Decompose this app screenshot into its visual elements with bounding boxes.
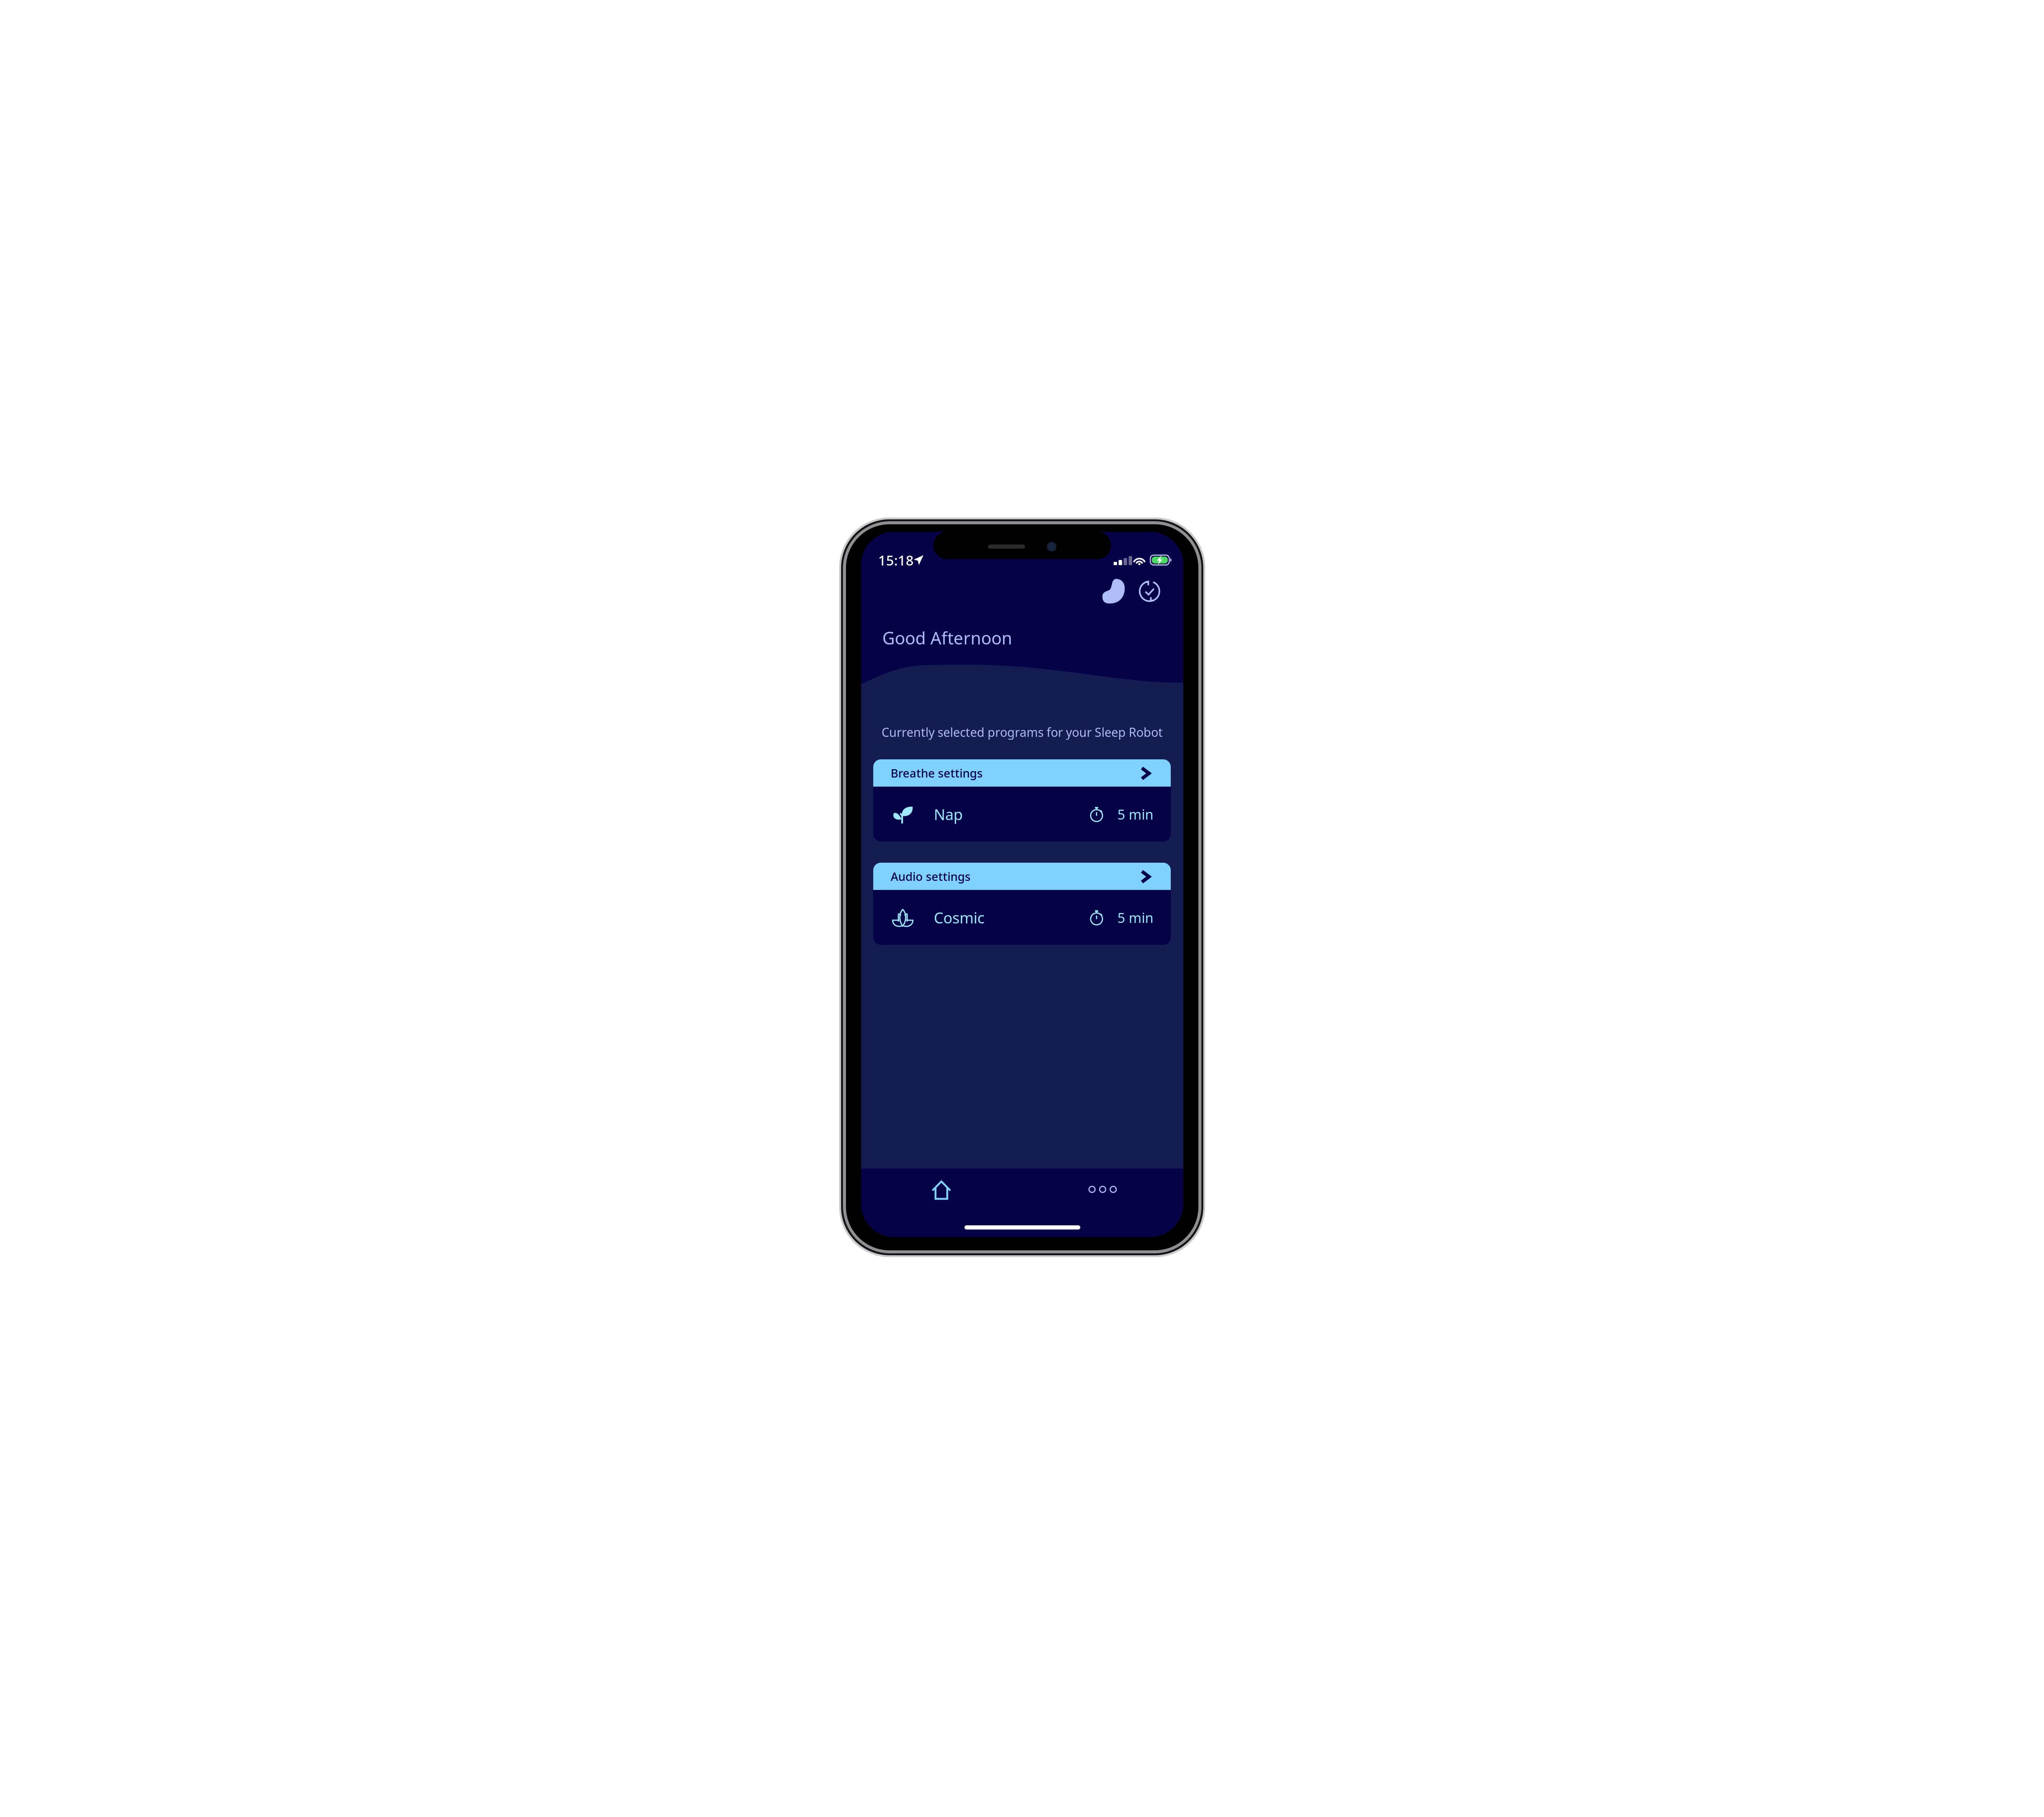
staticText: 5 min <box>1117 909 1153 927</box>
button[interactable]: Cosmic <box>873 890 1171 945</box>
staticText: Breathe settings <box>891 765 983 781</box>
staticText: 5 min <box>1117 805 1153 823</box>
button[interactable]: Audio settings <box>873 863 1171 890</box>
button[interactable]: Sleep Robot <box>1102 578 1128 604</box>
staticText: Currently selected programs for your Sle… <box>882 724 1163 740</box>
button[interactable]: More <box>1092 1185 1114 1194</box>
staticText: Cosmic <box>934 908 985 928</box>
button[interactable]: Sync history <box>1138 580 1161 603</box>
button[interactable]: Breathe settings <box>873 759 1171 787</box>
staticText: Audio settings <box>891 869 971 884</box>
staticText: 15:18 <box>878 551 914 569</box>
staticText: Good Afternoon <box>882 626 1012 649</box>
button[interactable]: Nap <box>873 787 1171 841</box>
button[interactable]: Home <box>932 1181 951 1200</box>
staticText: Nap <box>934 804 963 824</box>
